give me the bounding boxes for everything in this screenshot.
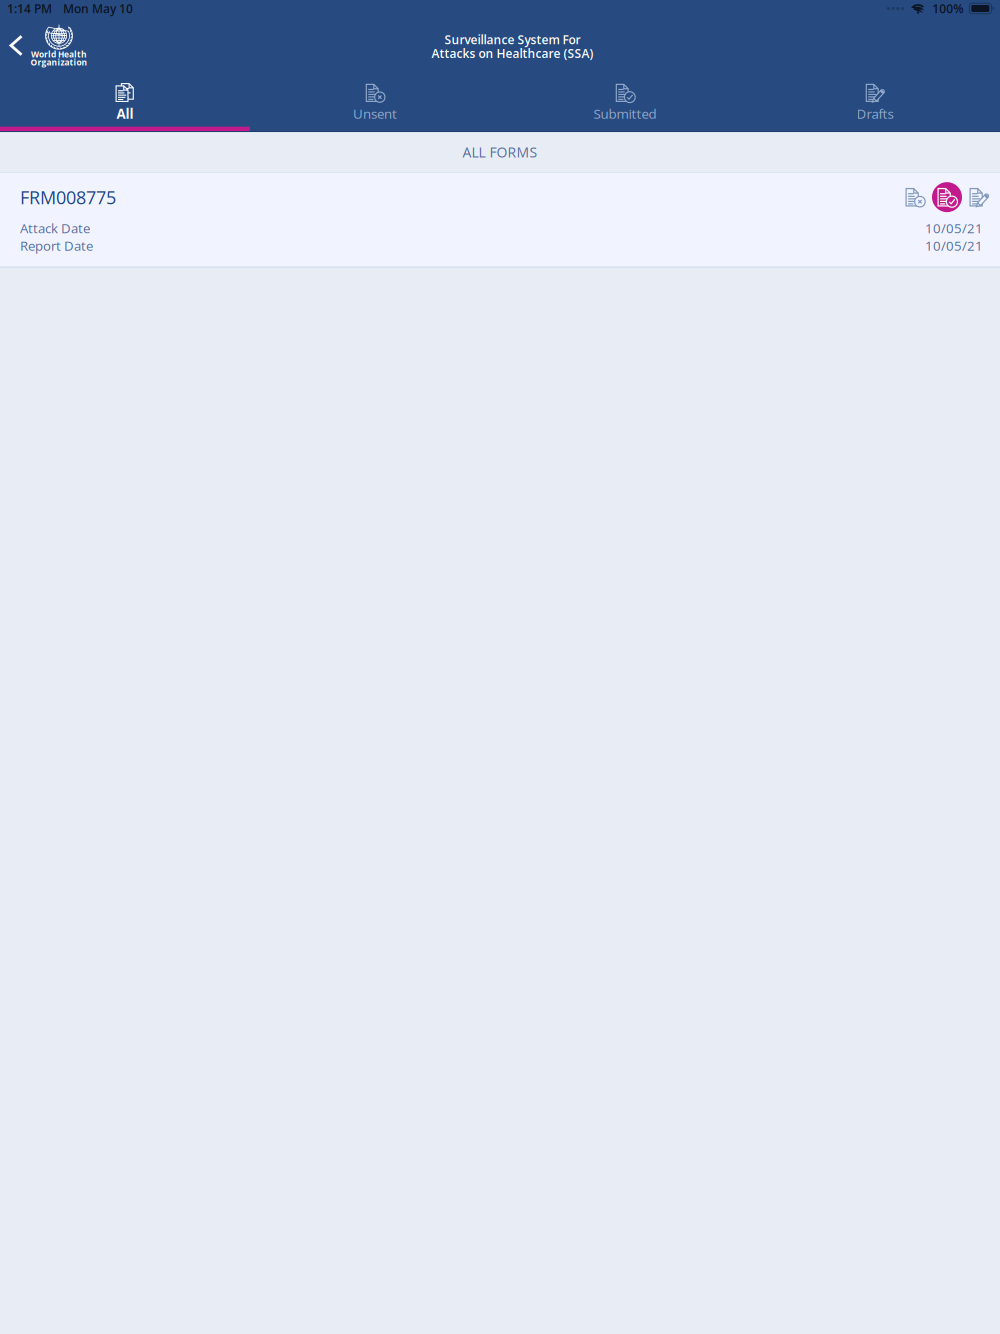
staticText: Mon May 10: [63, 0, 133, 17]
staticText: Unsent: [353, 104, 397, 123]
button[interactable]: Submitted: [931, 181, 963, 213]
staticText: FRM008775: [20, 185, 116, 209]
staticText: 1:14 PM: [7, 0, 52, 17]
staticText: 10/05/21: [925, 219, 983, 237]
staticText: Surveillance System For: [444, 31, 580, 48]
button[interactable]: Drafts: [750, 78, 1000, 127]
staticText: ALL FORMS: [462, 143, 537, 162]
button[interactable]: Draft: [963, 181, 995, 213]
staticText: All: [116, 104, 133, 123]
staticText: 10/05/21: [925, 237, 983, 255]
button[interactable]: Unsent: [899, 181, 931, 213]
staticText: 100%: [932, 0, 963, 17]
staticText: Drafts: [856, 104, 893, 123]
button[interactable]: Submitted: [500, 78, 750, 127]
button[interactable]: Unsent: [250, 78, 500, 127]
staticText: Submitted: [593, 104, 656, 123]
staticText: Attacks on Healthcare (SSA): [431, 45, 593, 61]
button[interactable]: All: [0, 78, 250, 127]
staticText: Report Date: [20, 237, 93, 255]
staticText: World Health: [31, 49, 87, 60]
staticText: Organization: [30, 56, 87, 68]
staticText: Attack Date: [20, 219, 90, 237]
button[interactable]: Back: [0, 31, 30, 68]
